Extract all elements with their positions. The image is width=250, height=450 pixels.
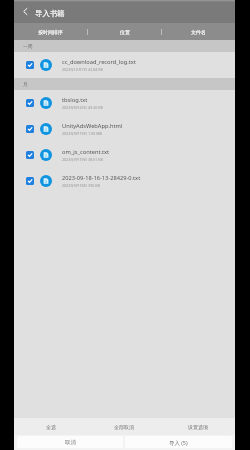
staticText: 取消 <box>65 439 76 446</box>
button[interactable]: 按时间排序 <box>14 23 87 40</box>
staticText: 导入 (5) <box>169 439 188 446</box>
staticText: 导入书籍 <box>35 9 65 18</box>
staticText: 一周 <box>23 43 33 49</box>
button[interactable]: Selected <box>14 142 235 168</box>
staticText: 全选 <box>46 424 56 430</box>
staticText: 月 <box>23 81 28 87</box>
button[interactable]: 全选 <box>14 418 87 435</box>
staticText: 2023年9月23日 49.20 KB <box>62 105 103 110</box>
staticText: 按时间排序 <box>38 29 63 35</box>
staticText: 2023-09-18-16-13-28429-0.txt <box>62 174 141 182</box>
button[interactable]: 取消 <box>17 436 123 448</box>
staticText: 2023年9月19日 1.90 MB <box>62 131 102 136</box>
other: Selected <box>26 151 34 159</box>
staticText: 2023年9月18日 396 KB <box>62 183 100 188</box>
button[interactable]: Selected <box>14 168 235 194</box>
staticText: UnityAdsWebApp.html <box>62 122 123 130</box>
button[interactable]: Selected <box>14 90 235 116</box>
button[interactable]: Selected <box>14 52 235 78</box>
staticText: 文件名 <box>191 29 206 35</box>
button[interactable]: 全部取消 <box>87 418 161 435</box>
staticText: om_js_content.txt <box>62 148 110 156</box>
staticText: 2023年10月7日 42.84 KB <box>62 67 103 72</box>
button[interactable]: 文件名 <box>162 23 235 40</box>
other: Selected <box>26 61 34 69</box>
other: Selected <box>26 99 34 107</box>
other: Selected <box>26 125 34 133</box>
staticText: tbslog.txt <box>62 96 88 104</box>
staticText: 2023年9月19日 38.61 KB <box>62 157 103 162</box>
button[interactable]: Back <box>18 4 33 19</box>
other: Selected <box>26 177 34 185</box>
button[interactable]: 导入 (5) <box>125 436 232 448</box>
button[interactable]: 位置 <box>88 23 161 40</box>
staticText: cc_download_record_log.txt <box>62 58 136 66</box>
button[interactable]: 设置选项 <box>161 418 235 435</box>
staticText: 设置选项 <box>188 424 208 430</box>
staticText: 位置 <box>120 29 130 35</box>
button[interactable]: Selected <box>14 116 235 142</box>
staticText: 全部取消 <box>114 424 134 430</box>
